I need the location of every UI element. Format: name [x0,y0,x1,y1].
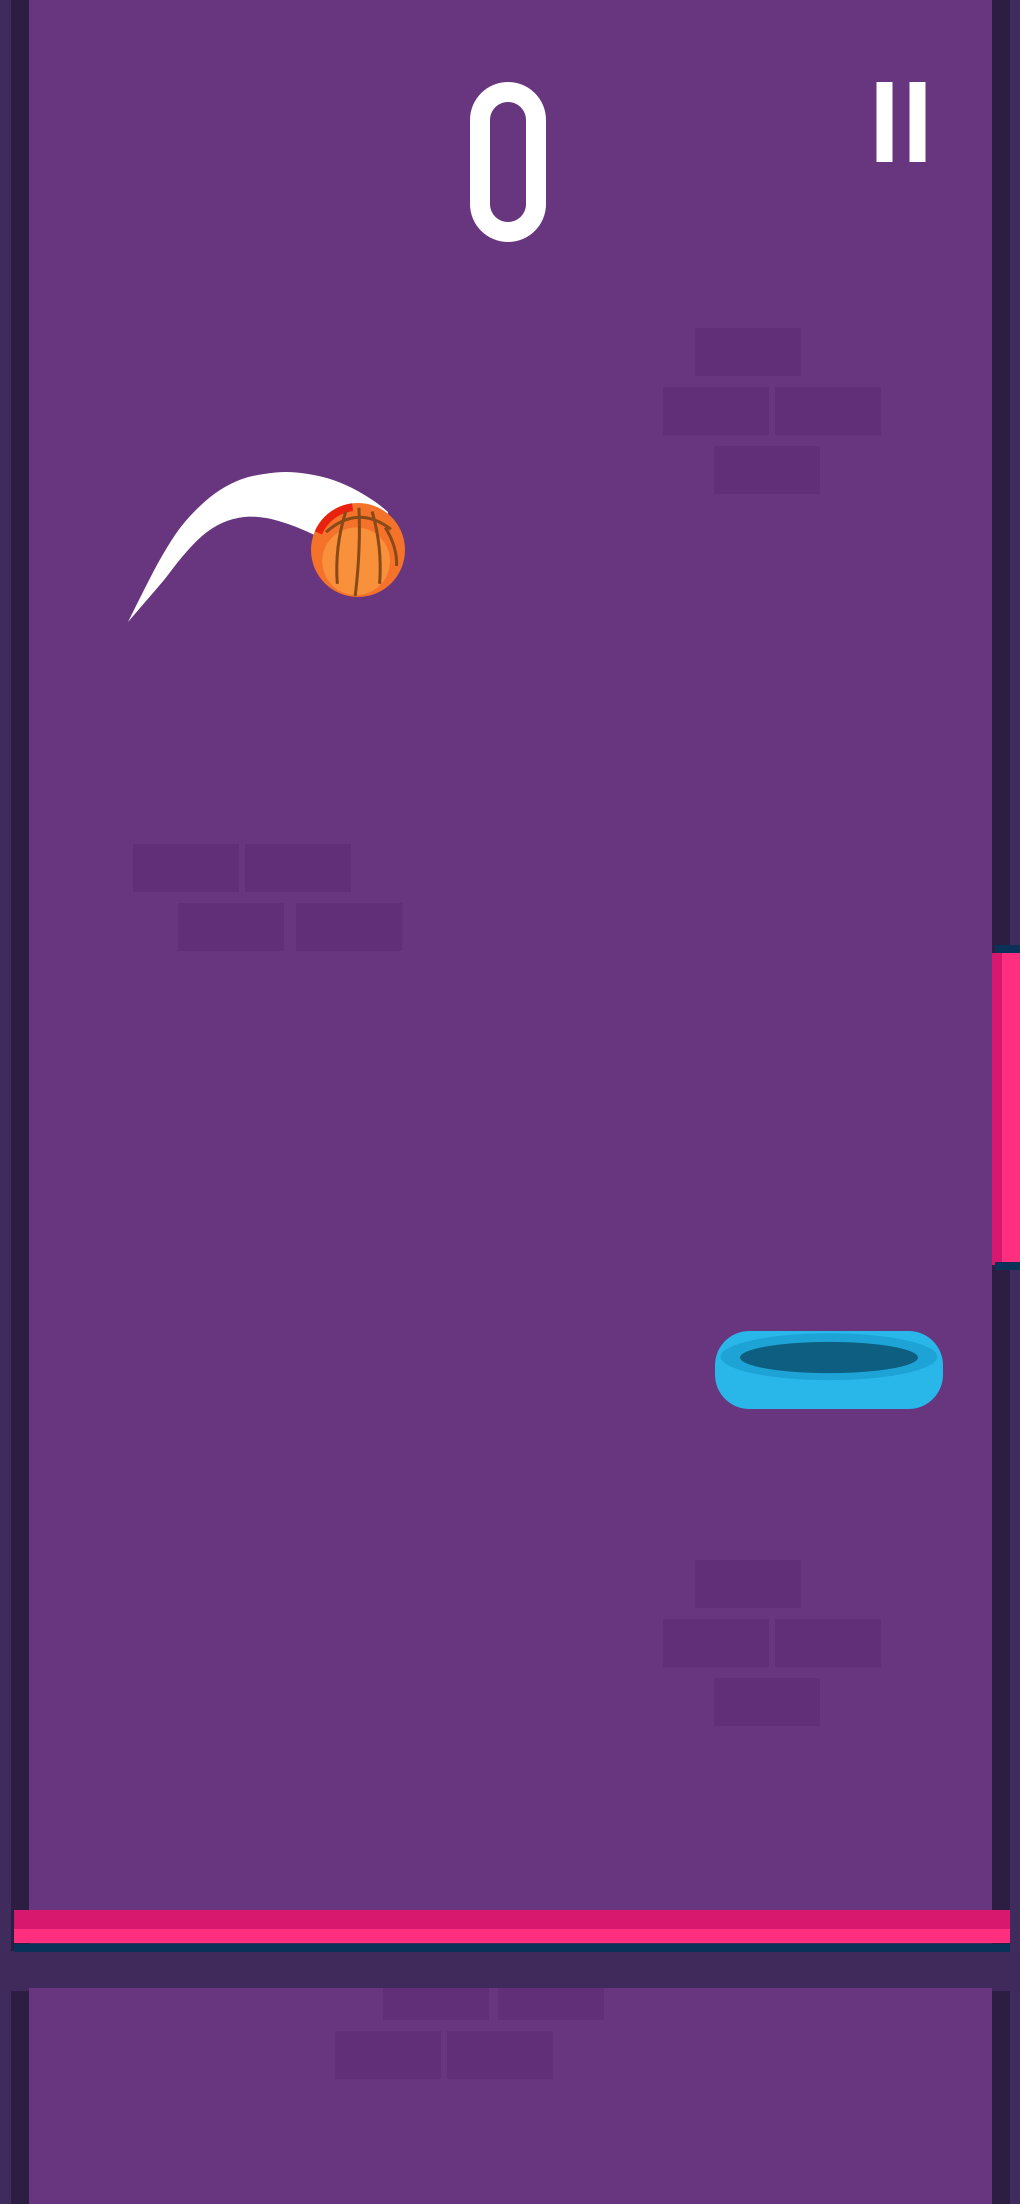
button[interactable]: Pause [841,56,961,188]
